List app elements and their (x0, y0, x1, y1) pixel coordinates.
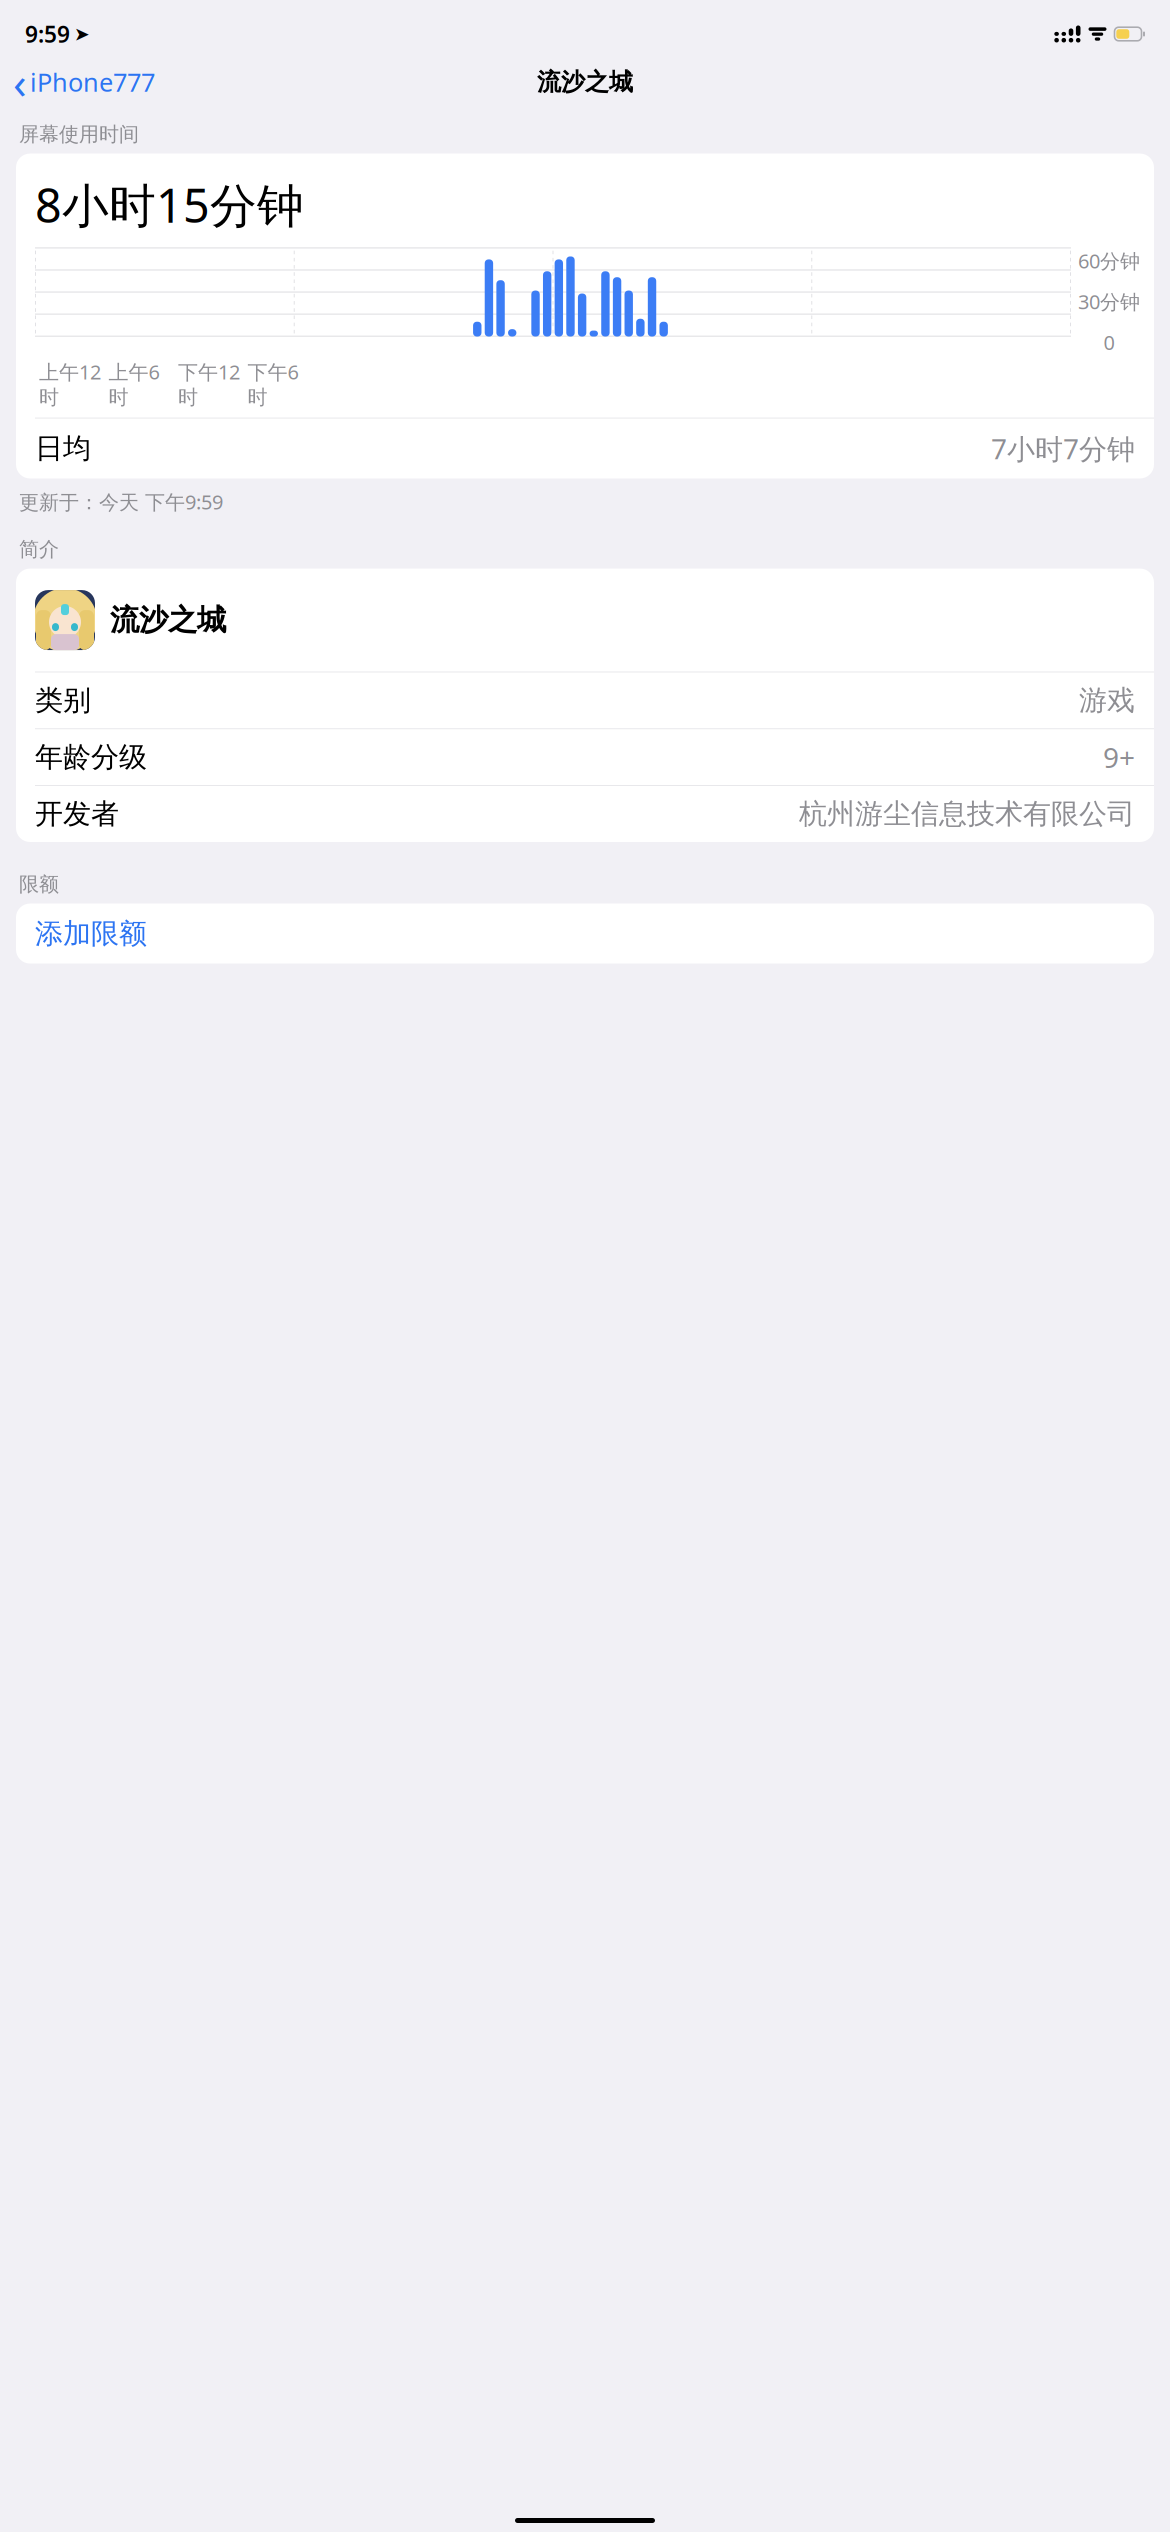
staticText: 7小时7分钟 (991, 430, 1135, 467)
staticText: 游戏 (1079, 683, 1135, 718)
staticText: 添加限额 (35, 916, 147, 951)
staticText: 60分钟 (1078, 247, 1140, 274)
button[interactable]: 添加限额 (16, 904, 1154, 964)
staticText: 下午12时 (178, 358, 240, 410)
staticText: 屏幕使用时间 (19, 122, 139, 147)
staticText: 简介 (19, 537, 59, 562)
staticText: 8小时15分钟 (35, 174, 304, 236)
staticText: 更新于：今天 下午9:59 (19, 488, 223, 515)
staticText: ➤ (74, 23, 90, 45)
staticText: 年龄分级 (35, 740, 147, 774)
staticText: 上午6时 (108, 358, 159, 410)
staticText: 日均 (35, 431, 91, 466)
staticText: 流沙之城 (110, 602, 226, 638)
staticText: 杭州游尘信息技术有限公司 (799, 797, 1135, 831)
staticText: iPhone777 (30, 65, 155, 99)
staticText: 上午12时 (39, 358, 101, 410)
staticText: 9:59 (25, 19, 70, 49)
staticText: 类别 (35, 683, 91, 718)
staticText: 开发者 (35, 797, 119, 831)
staticText: 0 (1103, 329, 1114, 356)
staticText: ‹ (13, 53, 27, 111)
staticText: 下午6时 (247, 358, 298, 410)
staticText: 流沙之城 (537, 67, 633, 97)
button[interactable]: ‹ (5, 49, 163, 115)
staticText: 限额 (19, 872, 59, 897)
staticText: 9+ (1103, 739, 1135, 776)
staticText: 30分钟 (1078, 288, 1140, 315)
